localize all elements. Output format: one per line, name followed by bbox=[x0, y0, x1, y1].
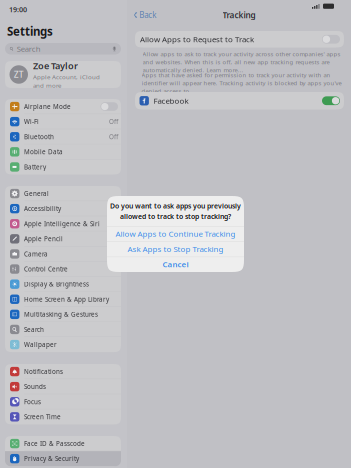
button[interactable]: Control Centre bbox=[5, 261, 121, 277]
button[interactable]: Search bbox=[5, 322, 121, 337]
staticText: Apple Account, iCloud and more bbox=[33, 73, 100, 89]
button[interactable]: General bbox=[5, 186, 121, 201]
staticText: ZT bbox=[14, 69, 24, 80]
staticText: Zoe Taylor bbox=[33, 59, 78, 72]
button[interactable]: Sounds bbox=[5, 379, 121, 394]
button[interactable]: Facebook bbox=[135, 92, 344, 109]
staticText: Accessibility bbox=[24, 204, 61, 213]
staticText: Battery bbox=[24, 163, 46, 171]
staticText: Mobile Data bbox=[24, 148, 63, 156]
staticText: Privacy & Security bbox=[24, 454, 79, 463]
staticText: Tracking bbox=[222, 9, 255, 21]
button[interactable]: Notifications bbox=[5, 364, 121, 379]
button[interactable]: Wi-Fi bbox=[5, 114, 121, 129]
staticText: Back bbox=[139, 10, 156, 20]
button[interactable]: Multitasking & Gestures bbox=[5, 307, 121, 322]
button[interactable]: Privacy & Security bbox=[5, 451, 121, 466]
staticText: Wi-Fi bbox=[24, 117, 39, 126]
staticText: 19:00 bbox=[9, 4, 27, 14]
staticText: Ask Apps to Stop Tracking bbox=[127, 244, 223, 254]
staticText: Sounds bbox=[24, 382, 46, 391]
staticText: Wallpaper bbox=[24, 340, 57, 349]
button[interactable]: ZT bbox=[5, 61, 121, 88]
button[interactable]: Face ID & Passcode bbox=[5, 436, 121, 451]
staticText: Apple Intelligence & Siri bbox=[24, 219, 100, 228]
staticText: allowed to track to stop tracking? bbox=[120, 212, 231, 221]
button[interactable]: Home Screen & App Library bbox=[5, 292, 121, 307]
staticText: Display & Brightness bbox=[24, 280, 89, 288]
staticText: Camera bbox=[24, 250, 48, 258]
button[interactable]: Screen Time bbox=[5, 409, 121, 424]
staticText: Off bbox=[109, 132, 118, 141]
staticText: Cancel bbox=[162, 259, 188, 270]
staticText: Airplane Mode bbox=[24, 102, 71, 111]
button[interactable]: Focus bbox=[5, 394, 121, 409]
staticText: Apple Pencil bbox=[24, 235, 63, 243]
staticText: Allow Apps to Request to Track bbox=[140, 34, 254, 45]
button[interactable]: Battery bbox=[5, 159, 121, 174]
staticText: Search bbox=[17, 43, 41, 54]
staticText: Allow apps to ask to track your activity… bbox=[142, 50, 340, 74]
button[interactable]: Cancel bbox=[107, 257, 244, 272]
staticText: Off bbox=[109, 117, 118, 126]
button[interactable]: Allow Apps to Continue Tracking bbox=[107, 226, 244, 241]
staticText: Bluetooth bbox=[24, 132, 54, 141]
button[interactable]: Apple Intelligence & Siri bbox=[5, 216, 121, 231]
button[interactable]: Back bbox=[130, 9, 160, 21]
staticText: Multitasking & Gestures bbox=[24, 310, 98, 319]
button[interactable]: Ask Apps to Stop Tracking bbox=[107, 241, 244, 257]
staticText: Face ID & Passcode bbox=[24, 439, 85, 448]
staticText: Settings bbox=[7, 23, 53, 39]
staticText: Do you want to ask apps you previously bbox=[110, 201, 241, 210]
button[interactable]: Allow Apps to Request to Track bbox=[135, 31, 344, 47]
button[interactable]: Mobile Data bbox=[5, 144, 121, 159]
button[interactable]: Accessibility bbox=[5, 201, 121, 216]
button[interactable]: Wallpaper bbox=[5, 337, 121, 352]
staticText: Focus bbox=[24, 397, 41, 406]
staticText: Apps that have asked for permission to t… bbox=[141, 71, 341, 95]
staticText: Screen Time bbox=[24, 413, 61, 421]
button[interactable]: Camera bbox=[5, 246, 121, 261]
staticText: Control Centre bbox=[24, 265, 68, 273]
button[interactable]: Display & Brightness bbox=[5, 277, 121, 292]
button[interactable]: Bluetooth bbox=[5, 129, 121, 144]
button[interactable]: Airplane Mode bbox=[5, 99, 121, 114]
staticText: Facebook bbox=[153, 95, 188, 106]
staticText: General bbox=[24, 189, 49, 198]
button[interactable]: Apple Pencil bbox=[5, 231, 121, 246]
staticText: Allow Apps to Continue Tracking bbox=[115, 228, 235, 239]
staticText: Home Screen & App Library bbox=[24, 295, 109, 303]
staticText: Search bbox=[24, 325, 44, 334]
staticText: Notifications bbox=[24, 367, 63, 376]
